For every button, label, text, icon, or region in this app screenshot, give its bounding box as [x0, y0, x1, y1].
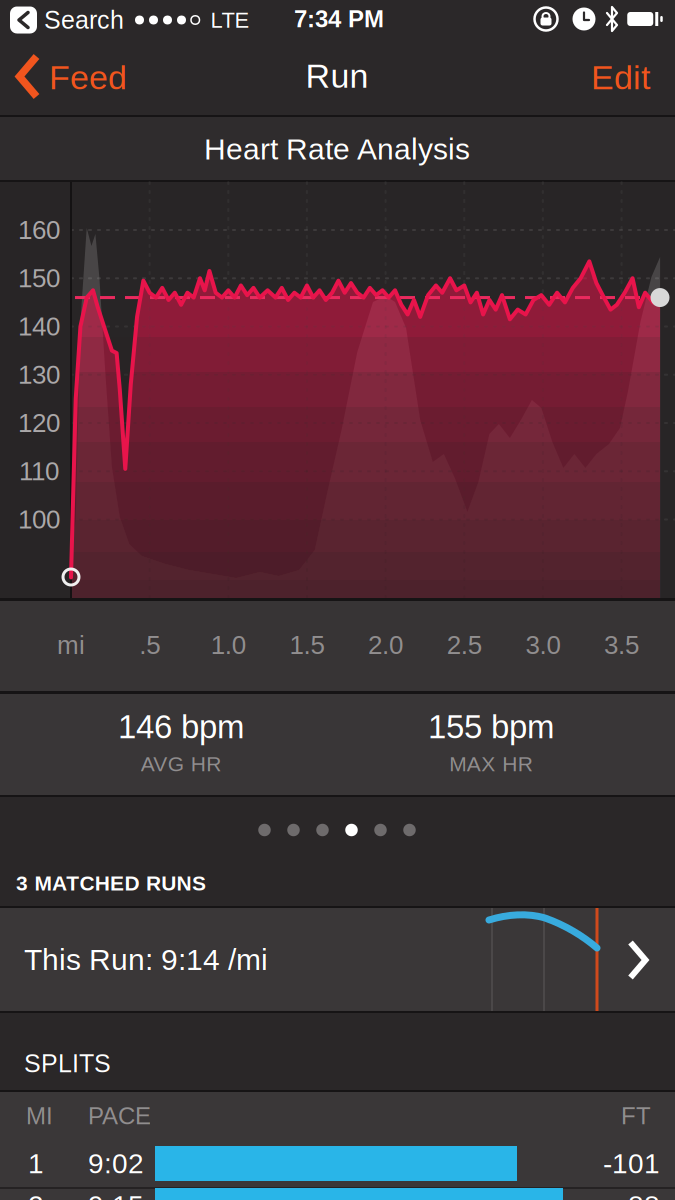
staticText: FT: [621, 1103, 651, 1129]
staticText: 100: [18, 505, 60, 534]
staticText: 1: [28, 1148, 44, 1179]
button[interactable]: Back to Feed: [0, 40, 127, 115]
staticText: LTE: [210, 8, 249, 32]
staticText: 2.5: [447, 630, 482, 659]
staticText: 140: [18, 312, 60, 341]
staticText: MI: [26, 1103, 53, 1129]
staticText: -101: [603, 1148, 660, 1179]
staticText: 110: [19, 457, 59, 486]
staticText: MAX HR: [449, 752, 533, 776]
staticText: PACE: [88, 1103, 151, 1129]
staticText: 146 bpm: [118, 708, 244, 745]
staticText: Feed: [49, 58, 127, 96]
staticText: Run: [305, 57, 368, 95]
staticText: 2: [28, 1190, 44, 1200]
staticText: 150: [18, 264, 60, 293]
button[interactable]: This Run: 9:14 per mile: [0, 908, 675, 1011]
staticText: 9:15: [88, 1190, 144, 1200]
staticText: 130: [18, 360, 60, 389]
staticText: 3 MATCHED RUNS: [16, 871, 206, 895]
staticText: SPLITS: [24, 1049, 111, 1077]
staticText: Search: [44, 6, 124, 34]
staticText: 3.5: [604, 630, 639, 659]
staticText: Heart Rate Analysis: [204, 132, 470, 166]
staticText: 7:34 PM: [294, 6, 384, 32]
staticText: .5: [139, 630, 160, 659]
staticText: 155 bpm: [428, 708, 554, 745]
staticText: 9:02: [88, 1148, 144, 1179]
staticText: -88: [619, 1190, 660, 1200]
staticText: 160: [18, 215, 60, 244]
staticText: 1.5: [289, 630, 324, 659]
button[interactable]: Edit: [591, 40, 675, 115]
staticText: 3.0: [525, 630, 560, 659]
button[interactable]: Back to Search: [10, 6, 124, 34]
button[interactable]: Page 4 of 6: [258, 814, 416, 846]
staticText: Edit: [591, 58, 650, 96]
staticText: 120: [18, 408, 60, 437]
staticText: 2.0: [368, 630, 403, 659]
staticText: This Run: 9:14 /mi: [24, 943, 268, 976]
staticText: mi: [57, 630, 85, 659]
staticText: AVG HR: [141, 752, 221, 776]
staticText: 1.0: [211, 630, 246, 659]
